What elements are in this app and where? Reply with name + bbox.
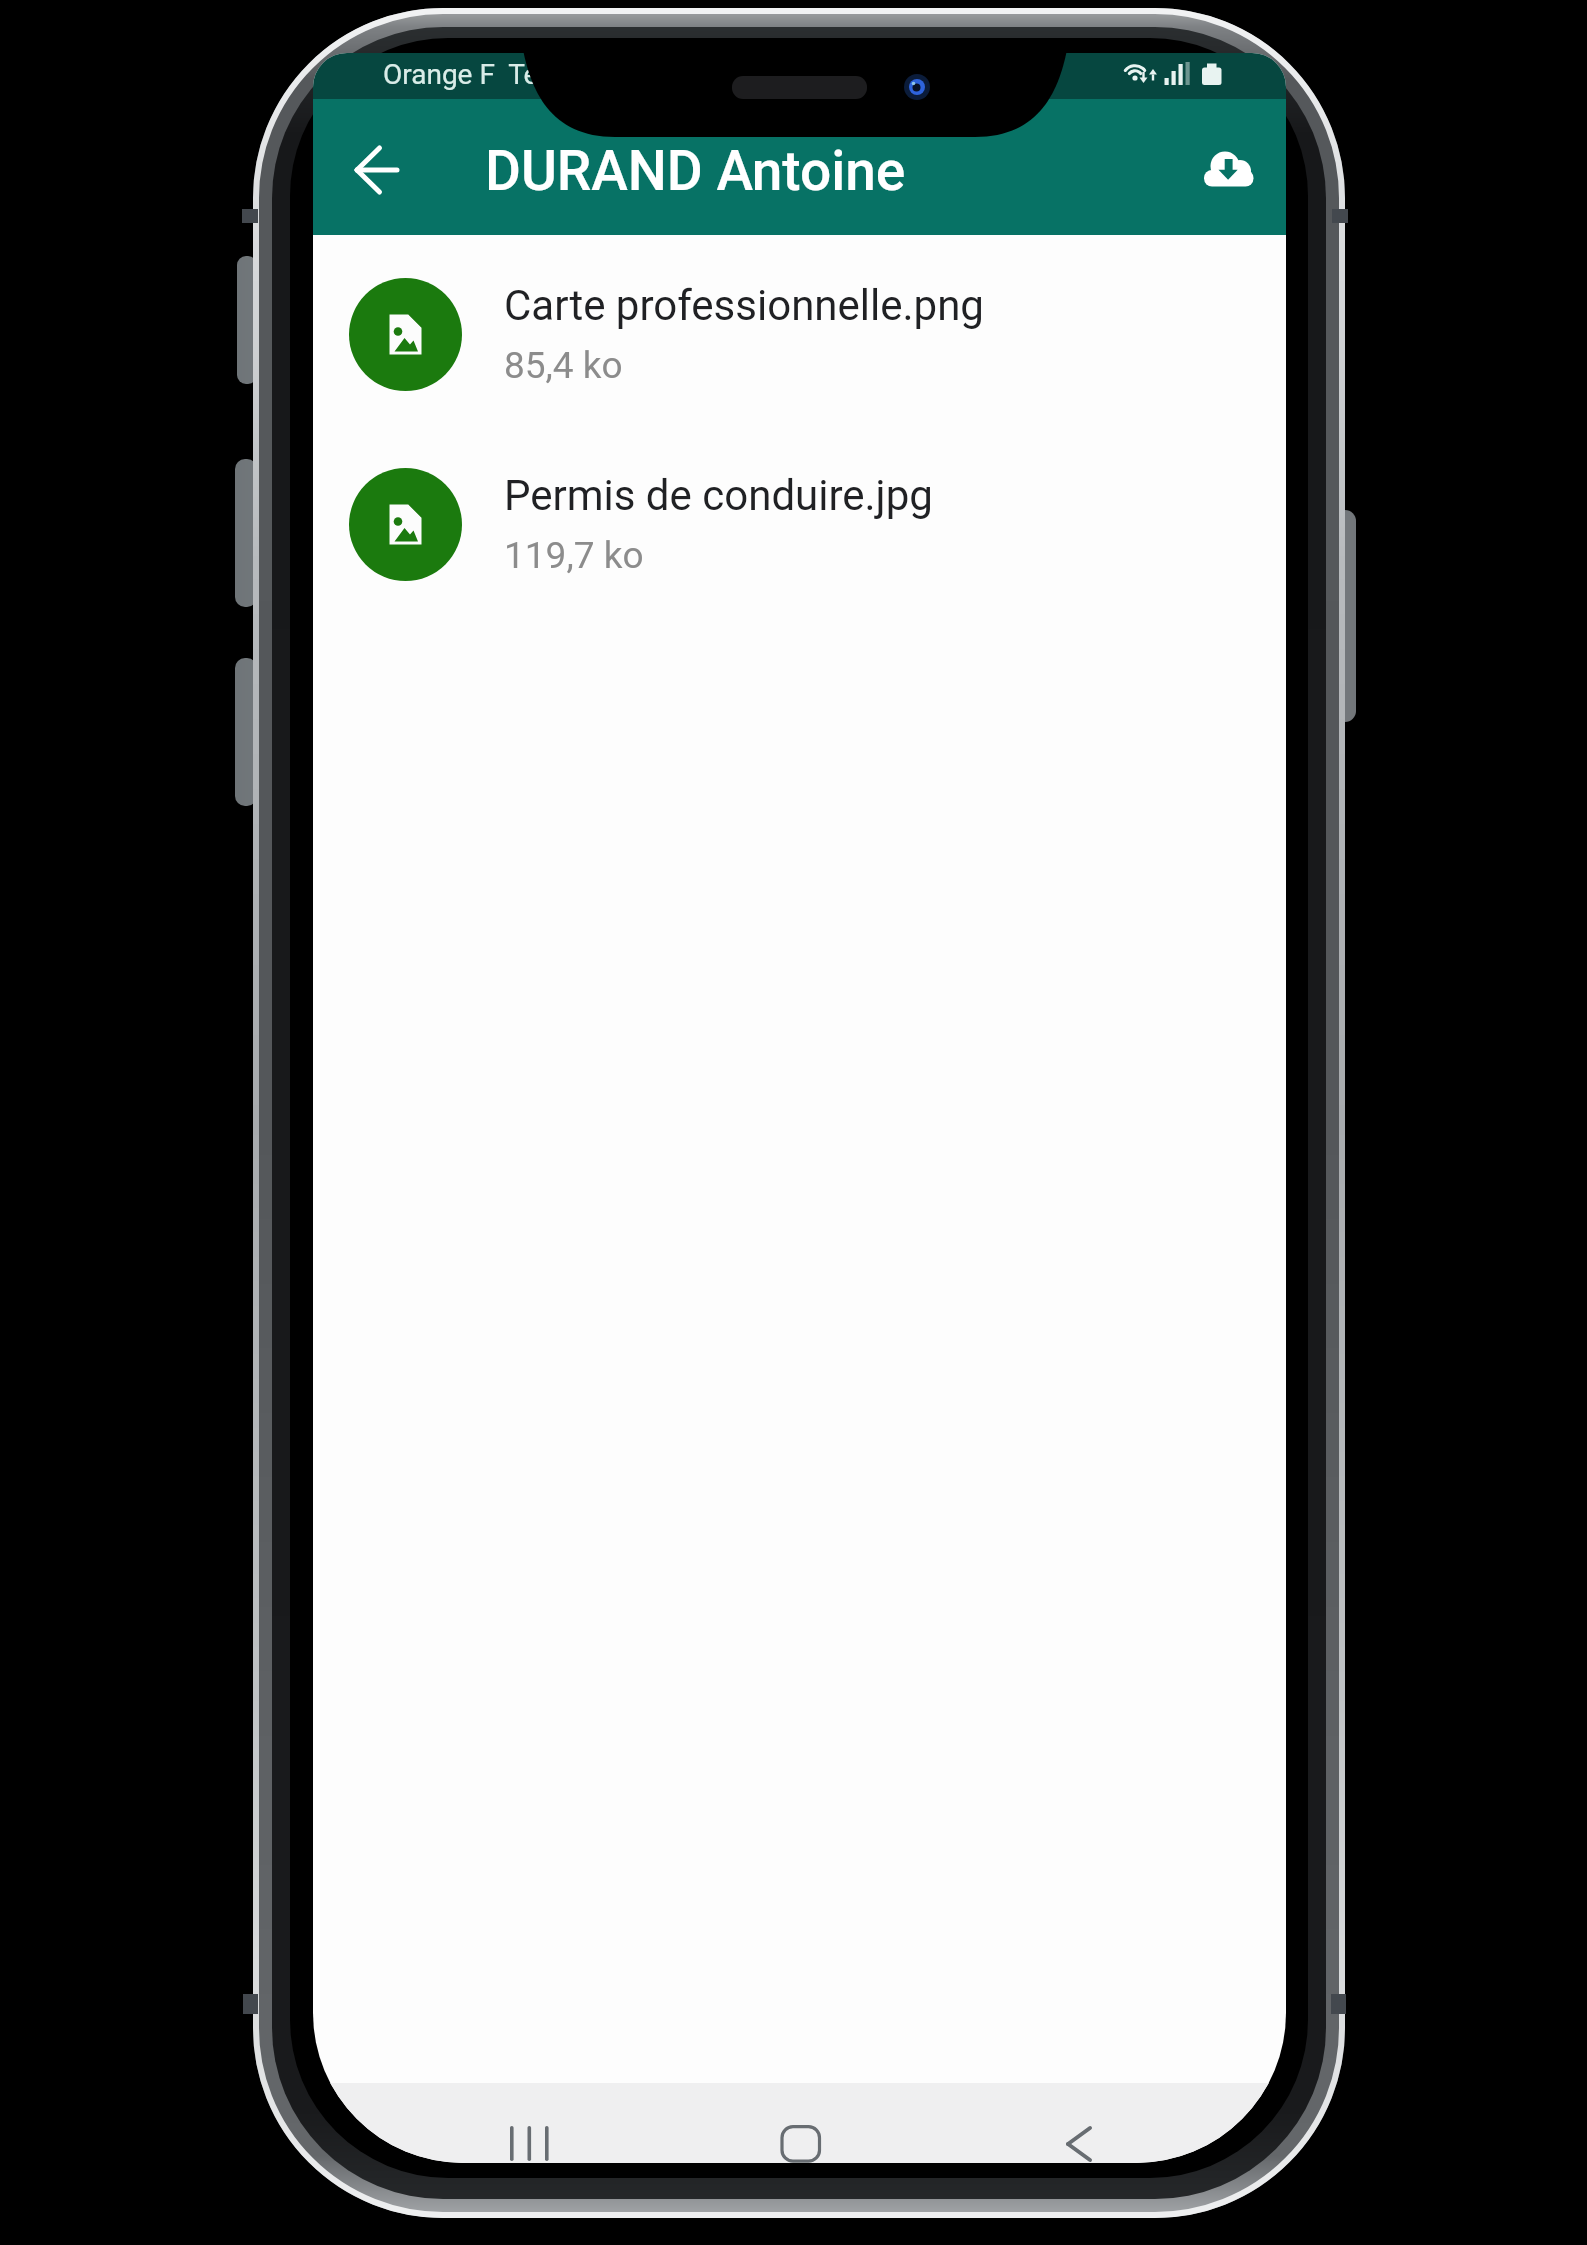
button[interactable] — [1194, 133, 1262, 201]
button[interactable] — [313, 2083, 638, 2163]
staticText: Orange F Télécom — [383, 58, 616, 91]
staticText: 85,4 ko — [504, 344, 623, 387]
staticText: Carte professionnelle.png — [504, 281, 984, 330]
button[interactable]: Permis de conduire.jpg — [313, 429, 1286, 619]
button[interactable] — [343, 136, 411, 204]
staticText: Permis de conduire.jpg — [504, 471, 933, 520]
button[interactable] — [962, 2083, 1286, 2163]
button[interactable] — [638, 2083, 962, 2163]
staticText: 119,7 ko — [504, 534, 644, 577]
staticText: DURAND Antoine — [485, 139, 906, 203]
button[interactable]: Carte professionnelle.png — [313, 239, 1286, 429]
